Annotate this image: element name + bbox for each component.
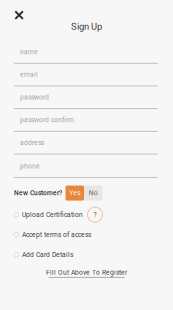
staticText: Fill Out Above To Register	[46, 269, 127, 276]
button[interactable]: phone	[14, 154, 158, 178]
staticText: password confirm	[20, 116, 74, 124]
button[interactable]: Yes	[65, 185, 84, 201]
staticText: password	[20, 93, 49, 101]
button[interactable]: name	[14, 41, 158, 64]
staticText: Add Card Details	[22, 251, 73, 258]
staticText: phone	[20, 162, 40, 170]
button[interactable]: address	[14, 132, 158, 154]
button[interactable]: No	[84, 185, 102, 201]
button[interactable]: email	[14, 64, 158, 86]
button[interactable]: password confirm	[14, 109, 158, 132]
staticText: email	[20, 71, 38, 78]
staticText: address	[20, 139, 44, 147]
staticText: Sign Up	[71, 21, 102, 32]
button[interactable]: password	[14, 86, 158, 109]
staticText: Yes	[69, 189, 80, 197]
button[interactable]: Help	[87, 207, 102, 222]
staticText: Upload Certification	[22, 211, 83, 218]
button[interactable]: Add Card Details	[14, 245, 173, 265]
staticText: No	[89, 189, 98, 197]
button[interactable]: Upload Certification	[14, 205, 87, 225]
button[interactable]: Fill Out Above To Register	[0, 269, 173, 278]
button[interactable]: Close	[11, 7, 27, 23]
staticText: New Customer?	[14, 189, 62, 197]
staticText: Accept terms of access	[22, 231, 91, 238]
staticText: name	[20, 48, 38, 56]
staticText: ?	[93, 211, 96, 218]
button[interactable]: Accept terms of access	[14, 225, 173, 245]
